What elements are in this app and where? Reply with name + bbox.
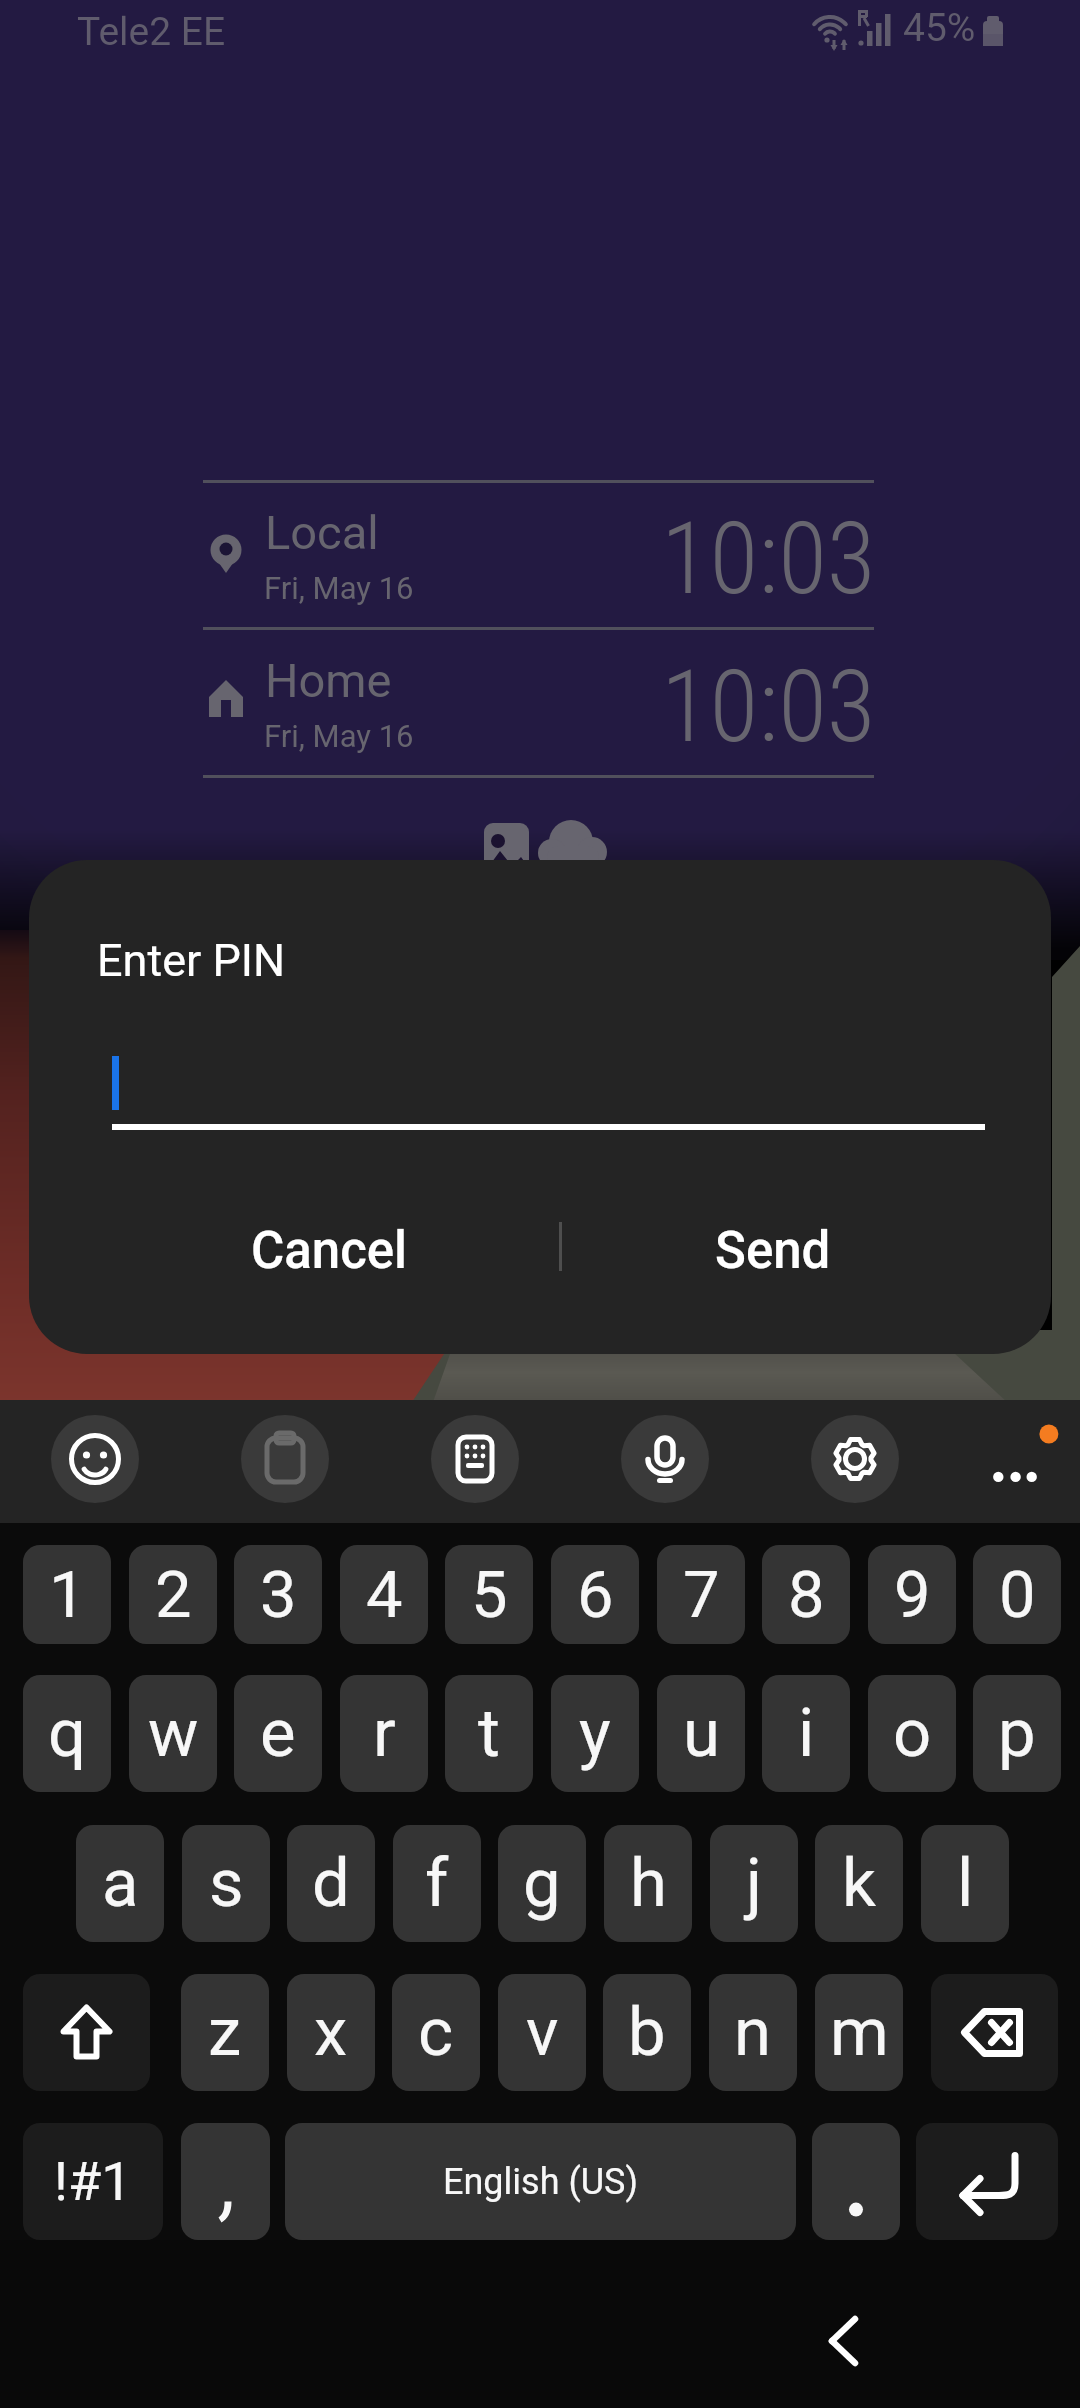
- button[interactable]: Clipboard: [241, 1415, 329, 1503]
- button[interactable]: q: [23, 1675, 111, 1792]
- button[interactable]: English (US): [285, 2123, 796, 2240]
- button[interactable]: [181, 2123, 270, 2240]
- button[interactable]: d: [287, 1825, 375, 1942]
- button[interactable]: m: [815, 1974, 903, 2091]
- button[interactable]: Send: [603, 1198, 943, 1303]
- button[interactable]: 3: [234, 1545, 322, 1644]
- button[interactable]: 1: [23, 1545, 111, 1644]
- staticText: !#1: [54, 2150, 132, 2213]
- staticText: 2: [155, 1557, 192, 1633]
- staticText: English (US): [443, 2161, 638, 2203]
- staticText: 10:03: [661, 648, 876, 765]
- staticText: o: [893, 1694, 932, 1773]
- button[interactable]: 6: [551, 1545, 639, 1644]
- button[interactable]: Backspace: [931, 1974, 1058, 2091]
- staticText: m: [830, 1993, 889, 2072]
- staticText: t: [478, 1694, 500, 1773]
- staticText: 45%: [903, 5, 976, 51]
- staticText: y: [579, 1694, 611, 1773]
- staticText: s: [209, 1844, 244, 1923]
- staticText: j: [746, 1844, 763, 1923]
- button[interactable]: Enter: [916, 2123, 1058, 2240]
- button[interactable]: Shift: [23, 1974, 150, 2091]
- button[interactable]: o: [868, 1675, 956, 1792]
- staticText: b: [628, 1993, 666, 2072]
- staticText: Local: [265, 505, 379, 560]
- staticText: 5: [471, 1557, 508, 1633]
- staticText: v: [526, 1993, 559, 2072]
- staticText: q: [48, 1694, 87, 1773]
- button[interactable]: v: [498, 1974, 586, 2091]
- button[interactable]: 2: [129, 1545, 217, 1644]
- button[interactable]: b: [603, 1974, 691, 2091]
- button[interactable]: [812, 2123, 900, 2240]
- button[interactable]: c: [392, 1974, 480, 2091]
- staticText: Cancel: [251, 1221, 408, 1281]
- staticText: p: [998, 1694, 1036, 1773]
- staticText: a: [102, 1844, 139, 1923]
- button[interactable]: e: [234, 1675, 322, 1792]
- button[interactable]: Emoji: [51, 1415, 139, 1503]
- button[interactable]: n: [709, 1974, 797, 2091]
- staticText: n: [734, 1993, 772, 2072]
- staticText: Enter PIN: [97, 934, 286, 987]
- button[interactable]: j: [710, 1825, 798, 1942]
- staticText: x: [314, 1993, 348, 2072]
- button[interactable]: 0: [973, 1545, 1061, 1644]
- button[interactable]: 5: [445, 1545, 533, 1644]
- staticText: 8: [788, 1557, 825, 1633]
- staticText: Fri, May 16: [264, 718, 414, 754]
- button[interactable]: More options: [968, 1408, 1063, 1503]
- button[interactable]: Settings: [811, 1415, 899, 1503]
- button[interactable]: l: [921, 1825, 1009, 1942]
- button[interactable]: Keypad: [431, 1415, 519, 1503]
- button[interactable]: u: [657, 1675, 745, 1792]
- staticText: h: [630, 1844, 667, 1923]
- button[interactable]: s: [182, 1825, 270, 1942]
- staticText: u: [683, 1694, 720, 1773]
- button[interactable]: Voice input: [621, 1415, 709, 1503]
- staticText: 6: [577, 1557, 614, 1633]
- staticText: i: [798, 1694, 815, 1773]
- staticText: 7: [683, 1557, 720, 1633]
- staticText: g: [523, 1844, 561, 1923]
- staticText: w: [148, 1694, 199, 1773]
- button[interactable]: k: [815, 1825, 903, 1942]
- button[interactable]: 9: [868, 1545, 956, 1644]
- button[interactable]: r: [340, 1675, 428, 1792]
- button[interactable]: 7: [657, 1545, 745, 1644]
- staticText: 1: [49, 1557, 86, 1633]
- button[interactable]: y: [551, 1675, 639, 1792]
- button[interactable]: x: [287, 1974, 375, 2091]
- button[interactable]: a: [76, 1825, 164, 1942]
- button[interactable]: w: [129, 1675, 217, 1792]
- staticText: f: [425, 1844, 449, 1923]
- staticText: 4: [366, 1557, 403, 1633]
- button[interactable]: !#1: [23, 2123, 163, 2240]
- button[interactable]: h: [604, 1825, 692, 1942]
- staticText: z: [208, 1993, 242, 2072]
- button[interactable]: Back: [794, 2291, 894, 2391]
- button[interactable]: g: [498, 1825, 586, 1942]
- staticText: 0: [999, 1557, 1036, 1633]
- staticText: r: [373, 1694, 396, 1773]
- button[interactable]: i: [762, 1675, 850, 1792]
- staticText: k: [842, 1844, 876, 1923]
- button[interactable]: z: [181, 1974, 269, 2091]
- staticText: Fri, May 16: [264, 570, 414, 606]
- staticText: 10:03: [661, 500, 876, 617]
- staticText: e: [260, 1694, 296, 1773]
- staticText: c: [418, 1993, 454, 2072]
- staticText: d: [312, 1844, 350, 1923]
- staticText: 3: [260, 1557, 297, 1633]
- staticText: Send: [715, 1221, 831, 1281]
- button[interactable]: t: [445, 1675, 533, 1792]
- staticText: 9: [894, 1557, 931, 1633]
- button[interactable]: 4: [340, 1545, 428, 1644]
- button[interactable]: p: [973, 1675, 1061, 1792]
- staticText: l: [957, 1844, 974, 1923]
- button[interactable]: 8: [762, 1545, 850, 1644]
- staticText: Home: [265, 653, 392, 708]
- button[interactable]: f: [393, 1825, 481, 1942]
- button[interactable]: Cancel: [159, 1198, 499, 1303]
